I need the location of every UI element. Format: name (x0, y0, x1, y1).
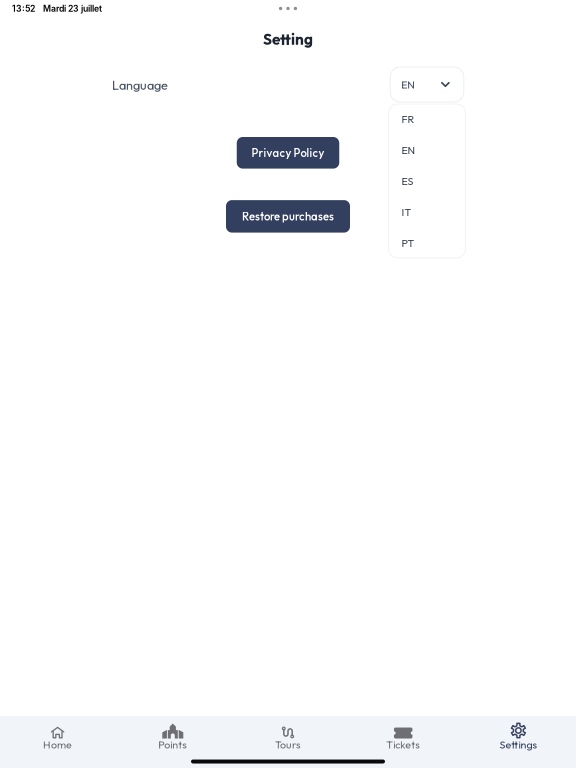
button[interactable]: PT (388, 227, 465, 258)
staticText: PT (401, 236, 414, 250)
staticText: EN (401, 78, 415, 91)
button[interactable]: Points (115, 716, 230, 753)
staticText: 13:52 (12, 3, 35, 14)
button[interactable]: IT (388, 196, 465, 227)
button[interactable]: EN (388, 134, 465, 165)
button[interactable]: Tickets (346, 716, 461, 753)
button[interactable]: Home (0, 716, 115, 753)
button[interactable]: Restore purchases (226, 200, 350, 233)
button[interactable]: ES (388, 165, 465, 196)
staticText: Restore purchases (242, 209, 334, 223)
staticText: ES (401, 174, 413, 188)
staticText: EN (401, 143, 415, 157)
staticText: FR (401, 112, 414, 126)
staticText: Tours (275, 738, 301, 751)
staticText: Points (158, 738, 187, 751)
staticText: Mardi 23 juillet (43, 3, 102, 14)
staticText: Privacy Policy (251, 146, 324, 160)
button[interactable]: Settings (461, 716, 576, 753)
staticText: Language (112, 77, 168, 93)
button[interactable]: Privacy Policy (237, 137, 339, 169)
staticText: Home (43, 738, 72, 751)
staticText: Settings (499, 738, 537, 751)
button[interactable]: Tours (230, 716, 346, 753)
button[interactable]: FR (388, 103, 465, 134)
staticText: IT (401, 205, 411, 219)
staticText: Tickets (386, 738, 420, 751)
staticText: Setting (263, 29, 313, 49)
button[interactable]: EN (390, 67, 464, 102)
